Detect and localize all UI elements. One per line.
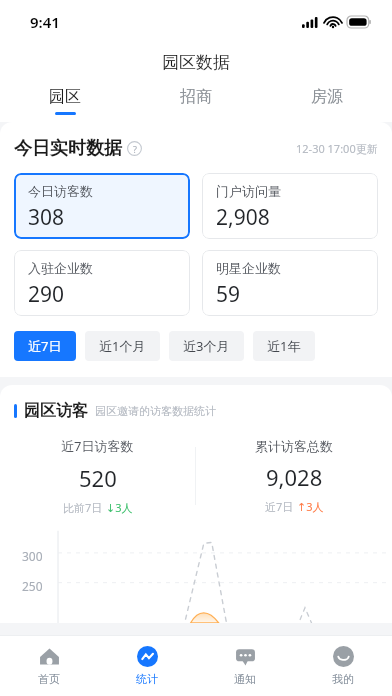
staticText: 近7日访客数 [61, 437, 134, 455]
button[interactable]: 首页 [0, 636, 98, 696]
staticText: 门户访问量 [216, 183, 281, 199]
staticText: 300 [22, 548, 43, 564]
staticText: 今日实时数据 [14, 137, 122, 160]
staticText: ↓3人 [106, 500, 133, 515]
staticText: 园区数据 [162, 52, 230, 73]
staticText: ↑3人 [297, 499, 324, 514]
button[interactable]: 门户访问量 [202, 173, 378, 239]
button[interactable]: 统计 [98, 636, 196, 696]
button[interactable]: 入驻企业数 [14, 250, 190, 316]
staticText: 园区访客 [24, 401, 88, 421]
staticText: 明星企业数 [216, 260, 281, 276]
staticText: 近1年 [267, 337, 301, 355]
button[interactable]: 说明 [127, 141, 142, 156]
staticText: 我的 [332, 672, 354, 686]
button[interactable]: 房源 [261, 80, 392, 122]
staticText: 250 [22, 578, 43, 594]
button[interactable]: 近1年 [253, 331, 315, 361]
staticText: 2,908 [216, 203, 270, 232]
staticText: 比前7日 [63, 500, 106, 515]
staticText: 累计访客总数 [255, 438, 333, 454]
staticText: 今日访客数 [28, 183, 93, 199]
staticText: 520 [79, 463, 117, 493]
staticText: 园区邀请的访客数据统计 [95, 404, 216, 418]
staticText: 9,028 [266, 462, 323, 492]
button[interactable]: 近1个月 [85, 331, 160, 361]
staticText: 59 [216, 280, 241, 309]
staticText: 308 [28, 203, 65, 232]
button[interactable]: 园区 [0, 80, 130, 122]
staticText: 近1个月 [99, 337, 146, 355]
staticText: ? [133, 143, 137, 155]
button[interactable]: 近7日 [14, 331, 76, 361]
staticText: 290 [28, 280, 65, 309]
button[interactable]: 招商 [130, 80, 261, 122]
staticText: 9:41 [30, 12, 60, 32]
staticText: 12-30 17:00更新 [296, 141, 378, 156]
button[interactable]: 明星企业数 [202, 250, 378, 316]
button[interactable]: 通知 [196, 636, 294, 696]
staticText: 招商 [180, 87, 212, 107]
staticText: 园区 [49, 87, 81, 107]
button[interactable]: 今日访客数 [14, 173, 190, 239]
staticText: 近3个月 [183, 337, 230, 355]
staticText: 近7日 [265, 499, 297, 514]
staticText: 房源 [311, 87, 343, 107]
staticText: 入驻企业数 [28, 260, 93, 276]
button[interactable]: 我的 [294, 636, 392, 696]
button[interactable]: 近3个月 [169, 331, 244, 361]
staticText: 近7日 [28, 337, 62, 355]
staticText: 统计 [136, 672, 158, 686]
staticText: 首页 [38, 672, 60, 686]
staticText: 通知 [234, 672, 256, 686]
